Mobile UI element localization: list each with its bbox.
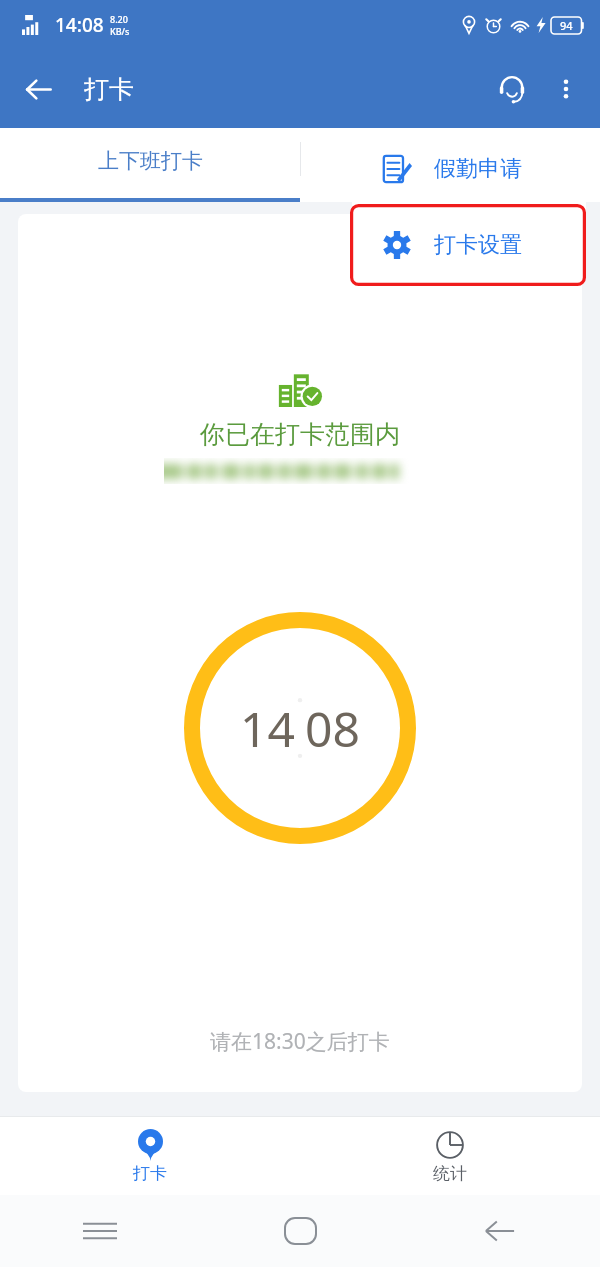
button[interactable]: Recents (0, 1195, 200, 1267)
button[interactable]: 假勤申请 (352, 133, 586, 205)
staticText: 14 (240, 696, 295, 761)
staticText: 假勤申请 (434, 155, 522, 183)
button[interactable]: 上下班打卡 (0, 128, 300, 202)
staticText: 8.20 (110, 13, 128, 25)
staticText: 94 (560, 18, 573, 33)
button[interactable]: 打卡 (0, 1117, 300, 1195)
staticText: 请在18:30之后打卡 (210, 1027, 390, 1056)
staticText: 你已在打卡范围内 (200, 419, 400, 450)
button[interactable]: Back (400, 1195, 600, 1267)
button[interactable]: Home (200, 1195, 400, 1267)
staticText: 打卡 (133, 1163, 167, 1184)
staticText: 打卡 (84, 74, 134, 105)
button[interactable]: More options (540, 63, 592, 115)
staticText: 14:08 (55, 12, 104, 38)
button[interactable]: Back (10, 61, 66, 117)
staticText: 08 (305, 696, 360, 761)
button[interactable]: 14 (184, 612, 416, 844)
staticText: 统计 (433, 1163, 467, 1184)
staticText: KB/s (110, 25, 130, 37)
staticText: 打卡设置 (434, 231, 522, 259)
button[interactable]: 统计 (300, 1117, 600, 1195)
staticText: 上下班打卡 (98, 148, 203, 174)
button[interactable]: Customer service (484, 61, 540, 117)
button[interactable]: 打卡设置 (352, 205, 586, 285)
